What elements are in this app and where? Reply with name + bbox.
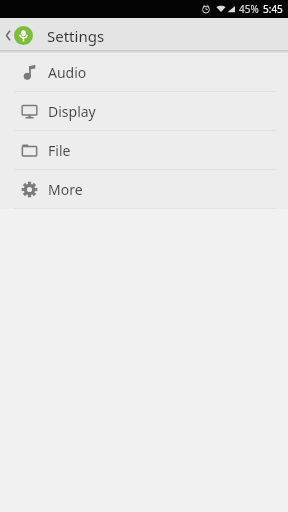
staticText: Audio <box>48 63 87 82</box>
staticText: Settings <box>47 26 105 46</box>
button[interactable]: Back <box>0 18 36 53</box>
staticText: 45% <box>239 2 259 16</box>
button[interactable]: More <box>0 170 288 209</box>
staticText: Display <box>48 102 96 121</box>
button[interactable]: File <box>0 131 288 170</box>
staticText: File <box>48 141 71 160</box>
staticText: 5:45 <box>263 2 283 16</box>
button[interactable]: Display <box>0 92 288 131</box>
button[interactable]: Audio <box>0 53 288 92</box>
staticText: More <box>48 180 83 199</box>
